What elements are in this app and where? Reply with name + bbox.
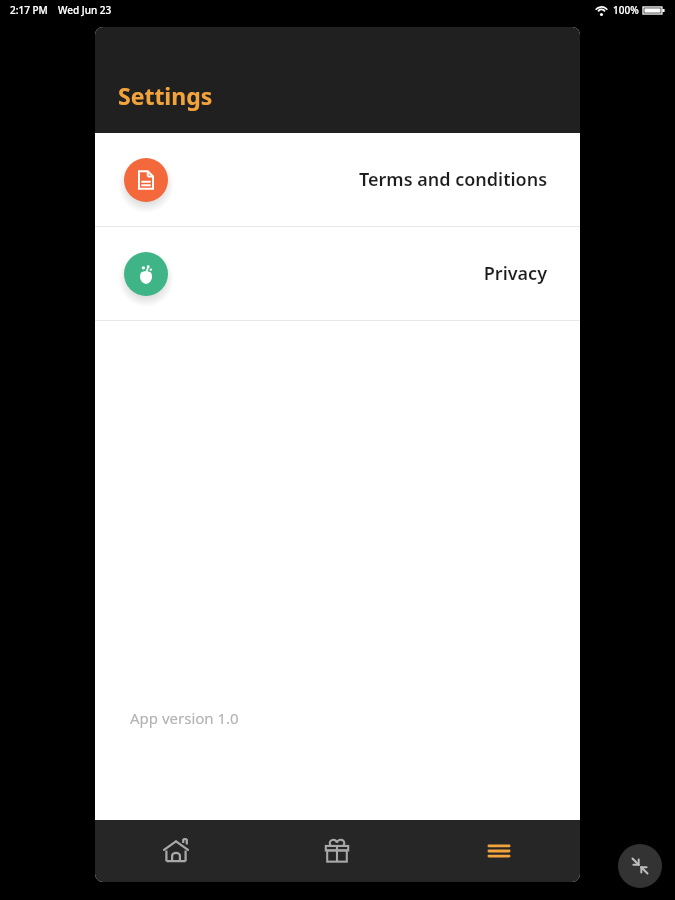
- staticText: 2:17 PM: [10, 3, 48, 17]
- button[interactable]: Rewards: [256, 820, 418, 882]
- button[interactable]: Collapse: [618, 844, 662, 888]
- button[interactable]: Menu: [418, 820, 580, 882]
- button[interactable]: Terms and conditions: [95, 133, 580, 226]
- button[interactable]: Privacy: [95, 227, 580, 320]
- staticText: Settings: [118, 80, 213, 111]
- button[interactable]: Home: [95, 820, 256, 882]
- staticText: App version 1.0: [130, 708, 239, 728]
- staticText: Terms and conditions: [359, 167, 547, 192]
- staticText: 100%: [613, 3, 639, 17]
- staticText: Privacy: [483, 261, 547, 286]
- staticText: Wed Jun 23: [58, 3, 112, 17]
